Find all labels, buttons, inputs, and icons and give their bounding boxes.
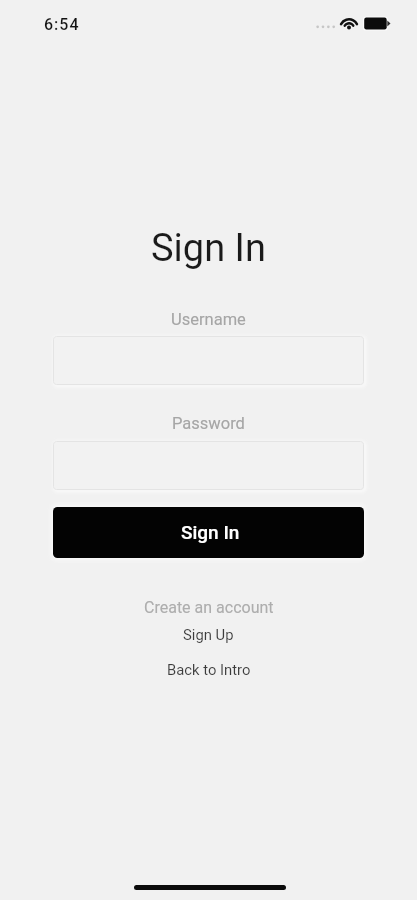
button[interactable]: Sign Up <box>183 626 234 643</box>
staticText: 6:54 <box>44 15 80 34</box>
staticText: Sign In <box>151 226 266 271</box>
button[interactable]: Back to Intro <box>167 661 251 678</box>
staticText: Sign Up <box>183 626 234 643</box>
staticText: Password <box>172 414 245 433</box>
staticText: Create an account <box>144 598 274 617</box>
other: Battery <box>363 16 391 32</box>
staticText: Username <box>171 310 246 329</box>
button[interactable]: Sign In <box>53 507 364 558</box>
other: Cellular signal <box>315 22 336 32</box>
button[interactable]: Create an account <box>144 598 274 617</box>
staticText: Sign In <box>181 521 240 543</box>
staticText: Back to Intro <box>167 661 251 678</box>
other: Wi-Fi <box>340 15 358 29</box>
